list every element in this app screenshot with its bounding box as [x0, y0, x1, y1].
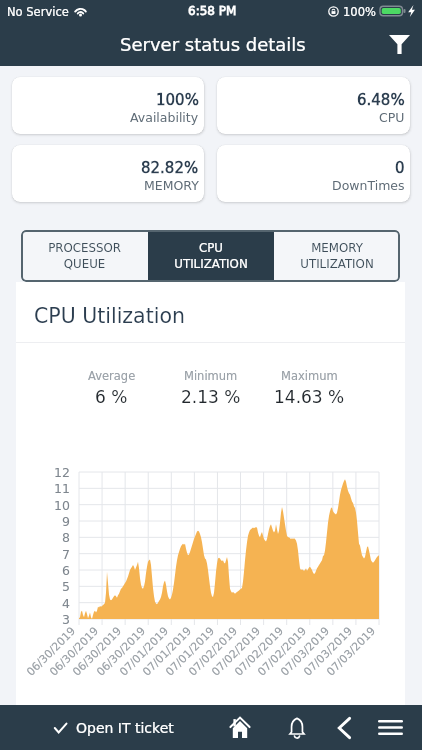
staticText: 6.48%	[357, 91, 405, 108]
staticText: 4	[62, 596, 70, 611]
staticText: 07/02/2019	[232, 624, 286, 678]
staticText: 82.82%	[141, 159, 199, 176]
button[interactable]: Home	[218, 705, 262, 750]
staticText: 2.13 %	[181, 387, 241, 407]
staticText: 07/01/2019	[140, 624, 194, 678]
button[interactable]: Menu	[368, 705, 412, 750]
button[interactable]: Filter	[382, 27, 416, 61]
staticText: Open IT ticket	[76, 720, 174, 736]
staticText: 11	[54, 481, 70, 496]
staticText: 06/30/2019	[24, 624, 78, 678]
button[interactable]: 82.82%	[12, 145, 204, 202]
button[interactable]: PROCESSOR QUEUE	[21, 230, 148, 282]
staticText: 100%	[343, 5, 376, 18]
button[interactable]: Open IT ticket	[42, 705, 185, 750]
staticText: 07/01/2019	[117, 624, 171, 678]
staticText: 07/03/2019	[324, 624, 378, 678]
button[interactable]: MEMORY UTILIZATION	[274, 230, 400, 282]
staticText: MEMORY	[144, 178, 199, 193]
button[interactable]: 6.48%	[217, 77, 410, 134]
staticText: 10	[54, 498, 70, 513]
staticText: MEMORY UTILIZATION	[300, 241, 374, 271]
staticText: CPU UTILIZATION	[174, 241, 248, 271]
staticText: 07/03/2019	[301, 624, 355, 678]
staticText: 8	[62, 530, 70, 545]
staticText: Maximum	[281, 369, 338, 382]
staticText: CPU	[379, 110, 405, 125]
staticText: 06/30/2019	[94, 624, 148, 678]
staticText: Average	[88, 369, 136, 382]
staticText: Availability	[130, 110, 199, 125]
button[interactable]: 0	[217, 145, 410, 202]
staticText: DownTimes	[332, 178, 405, 193]
staticText: 14.63 %	[274, 387, 345, 407]
staticText: No Service	[7, 5, 69, 18]
staticText: PROCESSOR QUEUE	[48, 241, 121, 271]
button[interactable]: Notifications	[275, 705, 319, 750]
staticText: 06/30/2019	[70, 624, 124, 678]
staticText: CPU Utilization	[34, 304, 185, 328]
button[interactable]: Back	[322, 705, 366, 750]
staticText: 0	[395, 159, 405, 176]
staticText: 5	[62, 579, 70, 594]
staticText: 07/02/2019	[186, 624, 240, 678]
button[interactable]: CPU UTILIZATION	[148, 230, 274, 282]
staticText: 7	[62, 547, 70, 562]
staticText: 6 %	[95, 387, 128, 407]
staticText: 6	[62, 563, 70, 578]
staticText: 100%	[156, 91, 199, 108]
staticText: 3	[62, 612, 70, 627]
staticText: 6:58 PM	[188, 4, 237, 18]
staticText: 07/03/2019	[278, 624, 332, 678]
staticText: 07/02/2019	[209, 624, 263, 678]
staticText: 06/30/2019	[47, 624, 101, 678]
staticText: 07/02/2019	[255, 624, 309, 678]
button[interactable]: 100%	[12, 77, 204, 134]
staticText: 12	[54, 465, 70, 480]
staticText: 07/01/2019	[163, 624, 217, 678]
staticText: 9	[62, 514, 70, 529]
staticText: Server status details	[120, 34, 306, 55]
staticText: Minimum	[184, 369, 238, 382]
